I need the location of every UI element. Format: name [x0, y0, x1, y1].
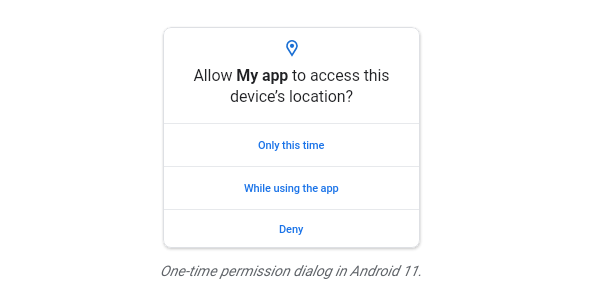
button[interactable]: Deny: [163, 210, 420, 248]
staticText: Deny: [279, 223, 304, 236]
staticText: Allow My app to access this device’s loc…: [163, 66, 420, 106]
button[interactable]: While using the app: [163, 167, 420, 209]
staticText: While using the app: [244, 182, 339, 195]
staticText: Only this time: [258, 139, 325, 152]
button[interactable]: Only this time: [163, 124, 420, 166]
staticText: One-time permission dialog in Android 11…: [160, 263, 422, 280]
